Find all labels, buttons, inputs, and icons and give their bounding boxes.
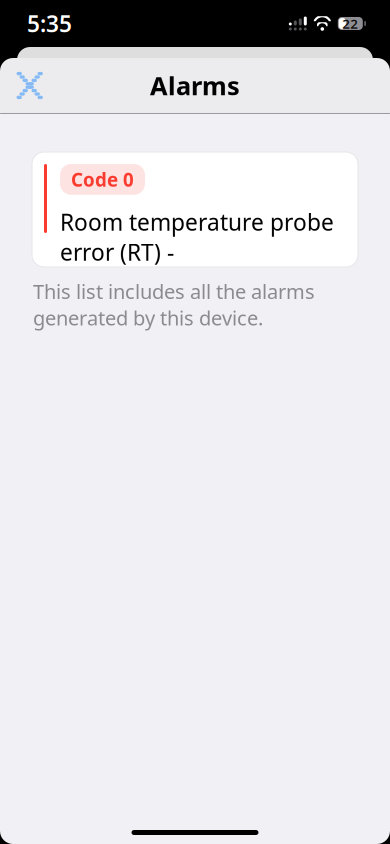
button[interactable]: Code 0 — [32, 152, 358, 267]
staticText: 5:35 — [27, 8, 72, 38]
staticText: Alarms — [150, 69, 240, 102]
staticText: Code 0 — [71, 167, 134, 192]
staticText: Room temperature probe error (RT) - — [60, 207, 334, 267]
button[interactable]: Close — [3, 58, 57, 112]
staticText: 22 — [342, 15, 358, 32]
staticText: This list includes all the alarms genera… — [33, 278, 315, 331]
